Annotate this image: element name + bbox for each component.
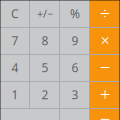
button[interactable]: Equals — [90, 108, 120, 120]
staticText: +/− — [37, 6, 53, 21]
button[interactable]: . — [60, 108, 90, 120]
button[interactable]: 3 — [60, 81, 90, 108]
staticText: 1 — [11, 86, 18, 102]
button[interactable]: 0 — [0, 108, 60, 120]
button[interactable]: 2 — [30, 81, 60, 108]
staticText: C — [11, 5, 19, 21]
button[interactable]: Add — [90, 81, 120, 108]
staticText: 6 — [71, 59, 78, 75]
staticText: 8 — [41, 32, 48, 48]
button[interactable]: C — [0, 0, 30, 27]
button[interactable]: 4 — [0, 54, 30, 81]
button[interactable]: 1 — [0, 81, 30, 108]
button[interactable]: Divide — [90, 0, 120, 27]
button[interactable]: Subtract — [90, 54, 120, 81]
staticText: 9 — [71, 32, 78, 48]
staticText: 4 — [11, 59, 18, 75]
staticText: 3 — [71, 86, 78, 102]
button[interactable]: Multiply — [90, 27, 120, 54]
button[interactable]: 8 — [30, 27, 60, 54]
button[interactable]: 9 — [60, 27, 90, 54]
button[interactable]: % — [60, 0, 90, 27]
button[interactable]: 5 — [30, 54, 60, 81]
staticText: 2 — [41, 86, 48, 102]
button[interactable]: 6 — [60, 54, 90, 81]
staticText: 7 — [11, 32, 18, 48]
button[interactable]: 7 — [0, 27, 30, 54]
staticText: % — [70, 5, 80, 21]
button[interactable]: +/− — [30, 0, 60, 27]
staticText: 5 — [41, 59, 48, 75]
